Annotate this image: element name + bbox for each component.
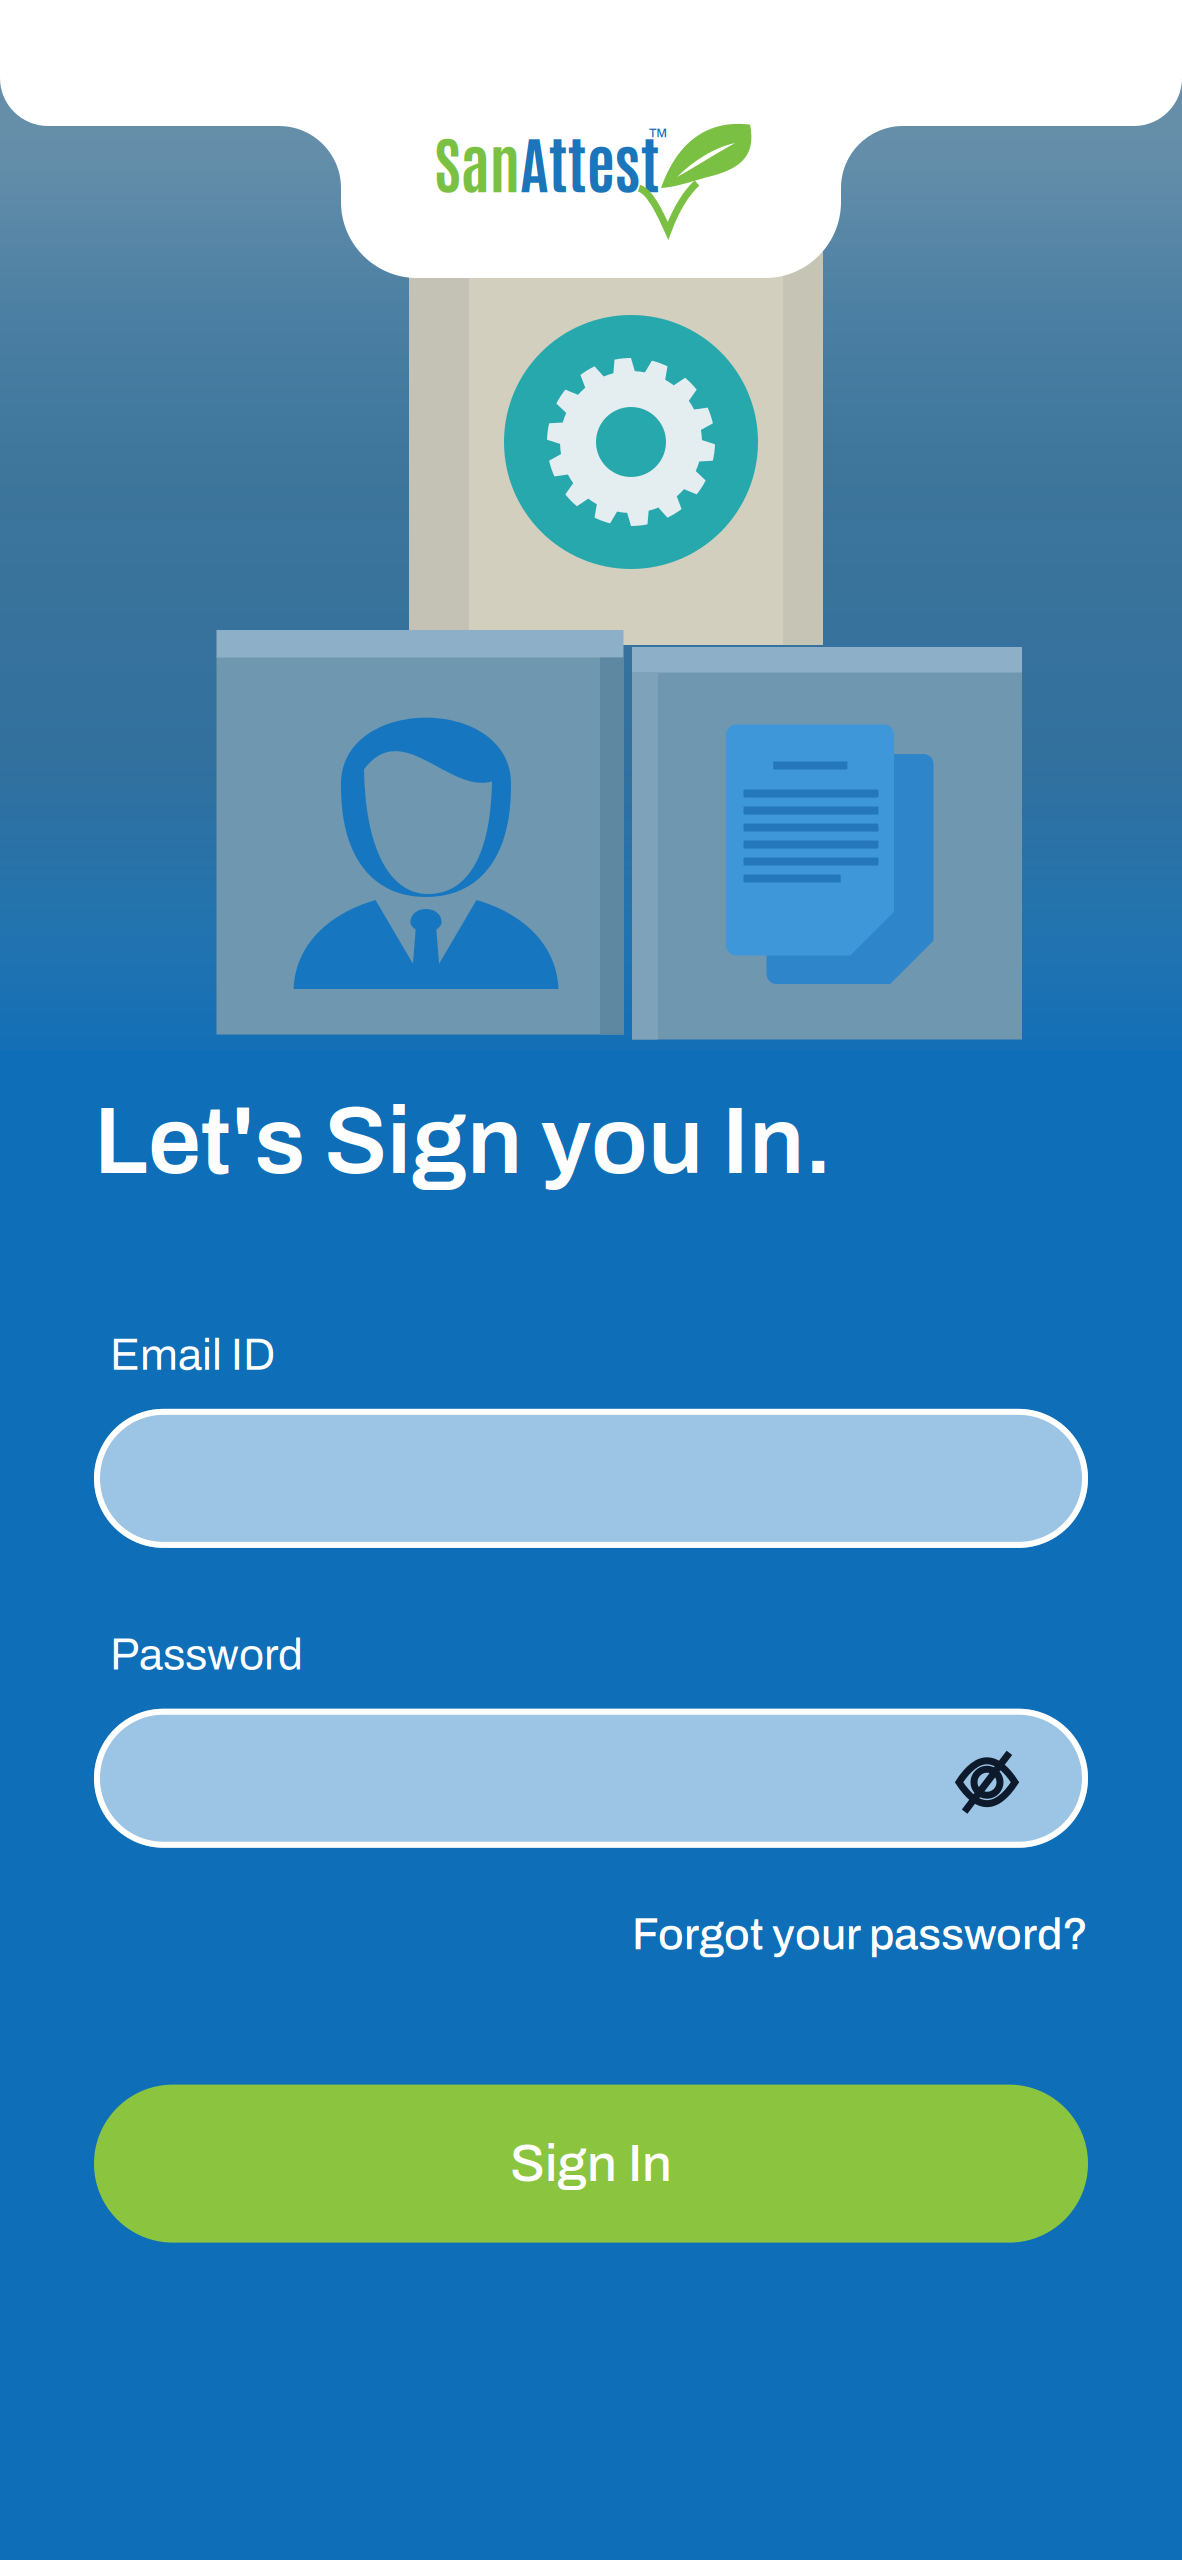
button[interactable]: Forgot your password? — [632, 1911, 1088, 1959]
button[interactable]: Show password — [929, 1735, 1058, 1821]
staticText: ™ — [647, 124, 668, 148]
button[interactable]: Sign In — [94, 2085, 1088, 2243]
staticText: San — [434, 121, 520, 201]
staticText: Password — [110, 1631, 303, 1679]
staticText: Forgot your password? — [632, 1911, 1088, 1959]
staticText: Let's Sign you In. — [94, 1090, 832, 1193]
staticText: Email ID — [110, 1331, 275, 1379]
staticText: Sign In — [510, 2135, 672, 2192]
staticText: Attest — [520, 121, 659, 201]
